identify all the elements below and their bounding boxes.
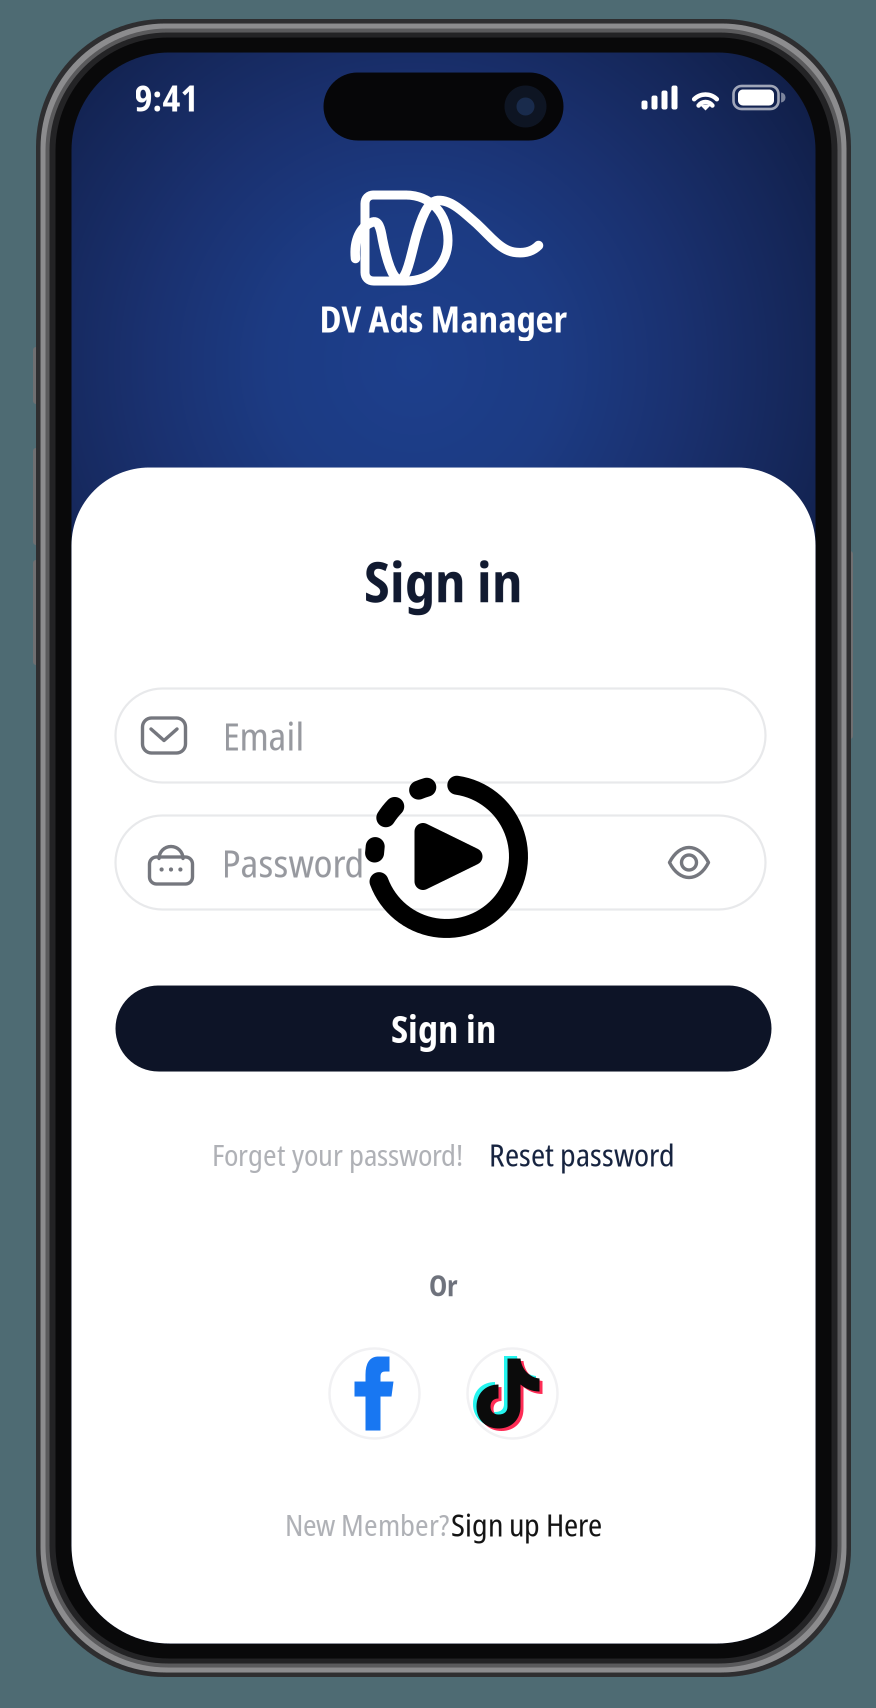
button[interactable]: Email [71,688,815,782]
button[interactable]: Reset password [463,1134,675,1175]
staticText: 9:41 [134,73,198,122]
staticText: Forget your password! [212,1134,463,1174]
staticText: Email [222,709,304,762]
staticText: Password [221,836,364,889]
button[interactable]: Password [71,815,815,909]
staticText: Sign in [364,542,523,619]
staticText: Or [429,1266,458,1304]
staticText: Sign up Here [451,1504,602,1545]
staticText: New Member? [285,1504,449,1544]
button[interactable]: Continue with Facebook [329,1348,419,1438]
button[interactable]: Continue with TikTok [467,1348,557,1438]
button[interactable]: Sign in [71,985,815,1071]
button[interactable]: Sign up Here [449,1504,602,1545]
staticText: Sign in [391,1003,496,1054]
staticText: Reset password [489,1134,675,1175]
staticText: DV Ads Manager [319,294,567,343]
